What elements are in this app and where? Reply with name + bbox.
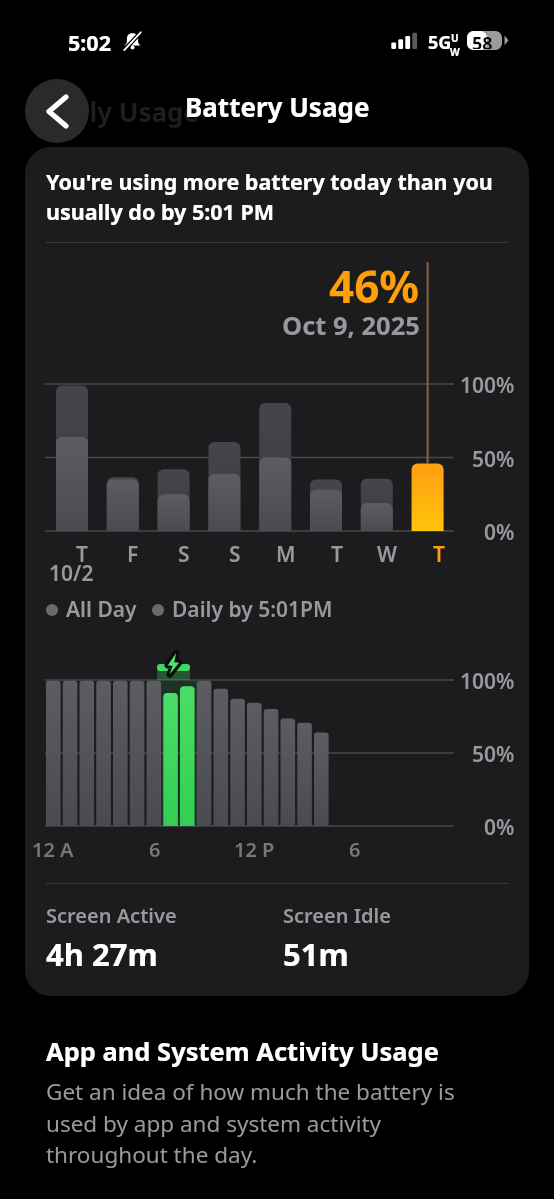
- staticText: Screen Idle: [283, 902, 391, 929]
- staticText: 5:02: [68, 28, 111, 57]
- staticText: Screen Active: [46, 902, 177, 929]
- staticText: Daily by 5:01PM: [172, 595, 333, 624]
- staticText: Battery Usage: [185, 89, 370, 124]
- staticText: 5G: [428, 30, 452, 55]
- staticText: T: [433, 540, 445, 569]
- staticText: T: [331, 540, 343, 569]
- staticText: S: [178, 540, 190, 569]
- staticText: 100%: [460, 667, 515, 696]
- button[interactable]: Back: [25, 79, 89, 143]
- staticText: W: [450, 45, 460, 59]
- staticText: M: [276, 540, 296, 569]
- staticText: 10/2: [49, 559, 94, 586]
- staticText: T: [76, 540, 88, 569]
- staticText: 46%: [329, 256, 420, 316]
- staticText: 58: [472, 31, 493, 49]
- staticText: Daily Usage: [47, 94, 199, 129]
- staticText: 12 P: [234, 836, 275, 863]
- staticText: All Day: [66, 595, 137, 624]
- staticText: 50%: [472, 740, 515, 769]
- staticText: You're using more battery today than you…: [46, 167, 517, 226]
- staticText: 0%: [484, 813, 515, 842]
- staticText: F: [127, 540, 139, 569]
- staticText: App and System Activity Usage: [46, 1034, 439, 1069]
- staticText: 51m: [283, 933, 349, 975]
- staticText: 100%: [460, 371, 515, 400]
- staticText: Get an idea of how much the battery is u…: [46, 1076, 498, 1169]
- staticText: S: [229, 540, 241, 569]
- staticText: 4h 27m: [46, 933, 158, 975]
- staticText: 50%: [472, 445, 515, 474]
- staticText: W: [377, 540, 398, 569]
- staticText: 12 A: [32, 836, 74, 863]
- staticText: Oct 9, 2025: [282, 308, 420, 343]
- staticText: U: [451, 31, 459, 45]
- staticText: 6: [349, 836, 361, 863]
- staticText: 0%: [484, 518, 515, 547]
- staticText: 6: [149, 836, 161, 863]
